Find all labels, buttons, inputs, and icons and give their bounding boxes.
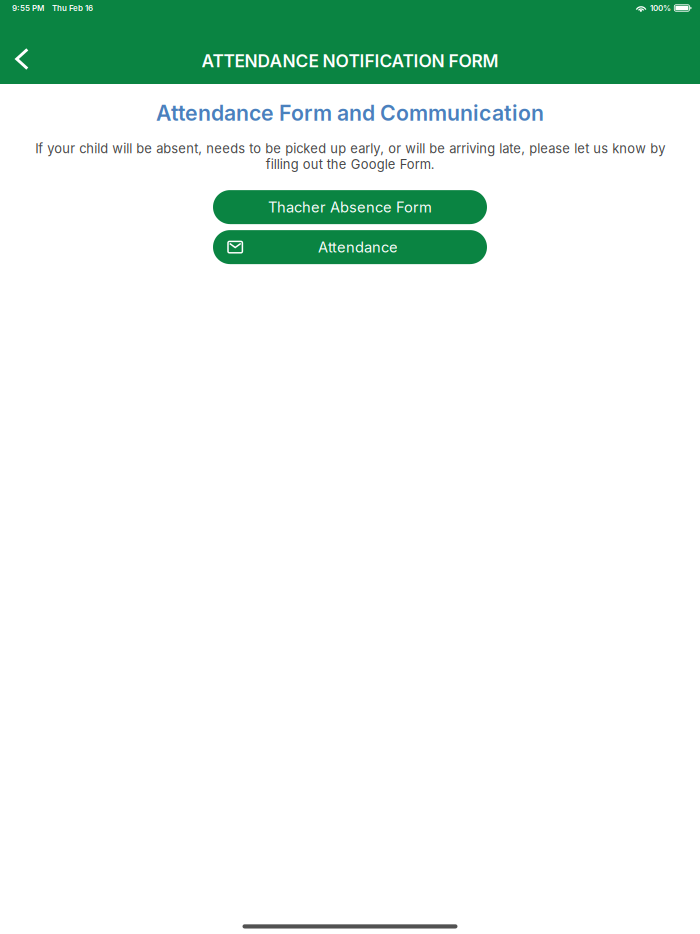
staticText: ATTENDANCE NOTIFICATION FORM [201,50,498,71]
staticText: Attendance [318,238,398,256]
staticText: 9:55 PM [12,3,44,13]
button[interactable]: Back [0,38,42,84]
button[interactable]: Attendance [213,230,487,264]
button[interactable]: Thacher Absence Form [213,190,487,224]
staticText: Attendance Form and Communication [156,100,544,126]
staticText: 100% [650,3,671,13]
staticText: If your child will be absent, needs to b… [35,141,665,172]
staticText: Thu Feb 16 [52,3,93,13]
staticText: Thacher Absence Form [268,198,432,216]
